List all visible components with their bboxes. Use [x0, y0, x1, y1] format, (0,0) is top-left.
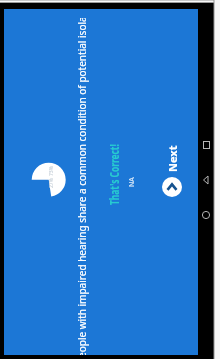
staticText: 27%	[48, 178, 55, 188]
staticText: 73%	[48, 166, 55, 176]
button[interactable]: Back	[198, 172, 214, 188]
button[interactable]: Home	[198, 207, 214, 223]
button[interactable]: Recents	[198, 137, 214, 153]
staticText: NA	[127, 177, 137, 187]
staticText: Next	[165, 145, 180, 172]
button[interactable]: Next	[162, 145, 182, 197]
staticText: That's Correct!	[106, 144, 122, 205]
staticText: People with impaired hearing share a com…	[75, 18, 89, 355]
